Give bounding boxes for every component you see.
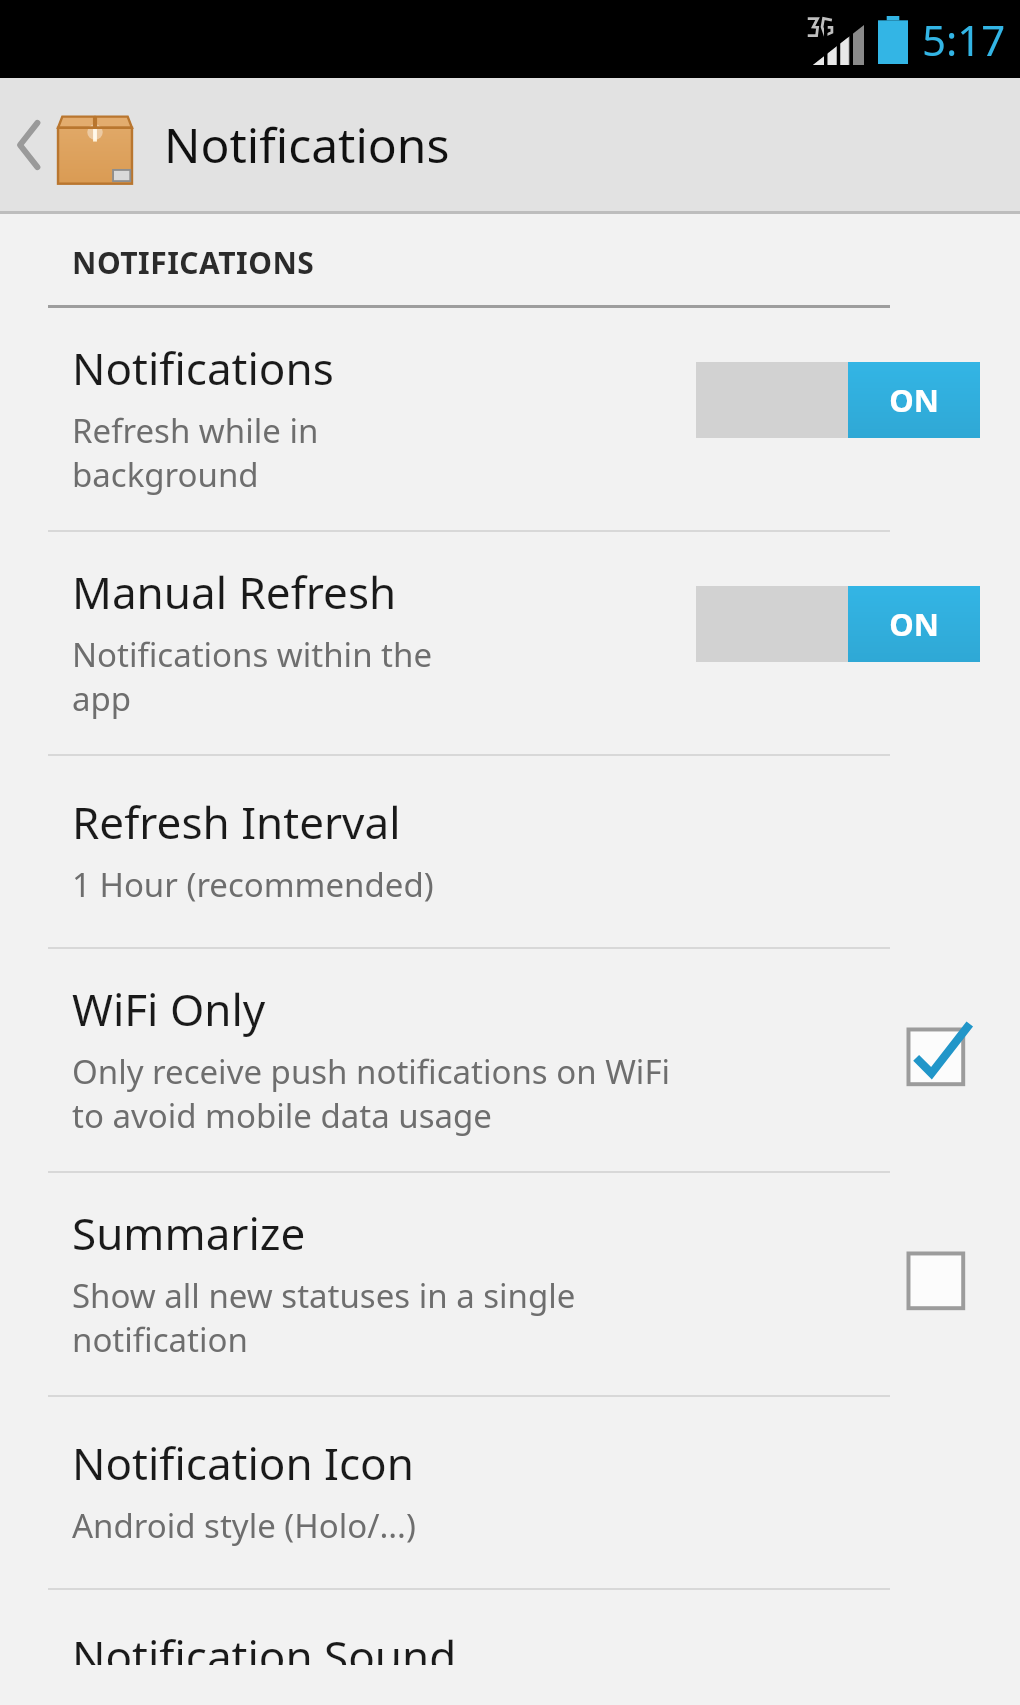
staticText: Only receive push notifications on WiFi … (72, 1049, 671, 1137)
staticText: Refresh Interval (72, 792, 401, 852)
staticText: Notifications (164, 112, 450, 177)
staticText: Notification Sound (72, 1626, 457, 1665)
staticText: WiFi Only (72, 979, 266, 1039)
staticText: Summarize (72, 1203, 306, 1263)
button[interactable]: Unchecked (902, 1247, 974, 1319)
staticText: Manual Refresh (72, 562, 397, 622)
staticText: ON (889, 603, 939, 645)
button[interactable]: Notifications (0, 308, 1020, 530)
button[interactable]: Notification Sound (0, 1590, 1020, 1705)
staticText: Notifications within the app (72, 632, 433, 720)
button[interactable]: Notification Icon (0, 1397, 1020, 1588)
staticText: Show all new statuses in a single notifi… (72, 1273, 576, 1361)
staticText: Notifications (72, 338, 334, 398)
staticText: Notification Icon (72, 1433, 414, 1493)
button[interactable]: Toggle on (696, 586, 980, 662)
button[interactable]: Navigate up (0, 78, 1020, 211)
button[interactable]: Summarize (0, 1173, 1020, 1395)
staticText: Android style (Holo/...) (72, 1503, 416, 1548)
button[interactable]: Toggle on (696, 362, 980, 438)
button[interactable]: WiFi Only (0, 949, 1020, 1171)
staticText: 1 Hour (recommended) (72, 862, 434, 907)
button[interactable]: Manual Refresh (0, 532, 1020, 754)
staticText: NOTIFICATIONS (72, 242, 315, 283)
staticText: ON (889, 379, 939, 421)
staticText: Refresh while in background (72, 408, 319, 496)
button[interactable]: Refresh Interval (0, 756, 1020, 947)
button[interactable]: Checked (902, 1023, 974, 1095)
staticText: 5:17 (922, 11, 1006, 68)
